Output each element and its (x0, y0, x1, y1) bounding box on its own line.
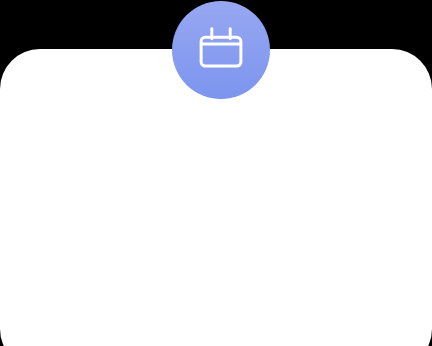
button[interactable]: Calendar (172, 1, 270, 99)
button[interactable] (0, 49, 432, 346)
